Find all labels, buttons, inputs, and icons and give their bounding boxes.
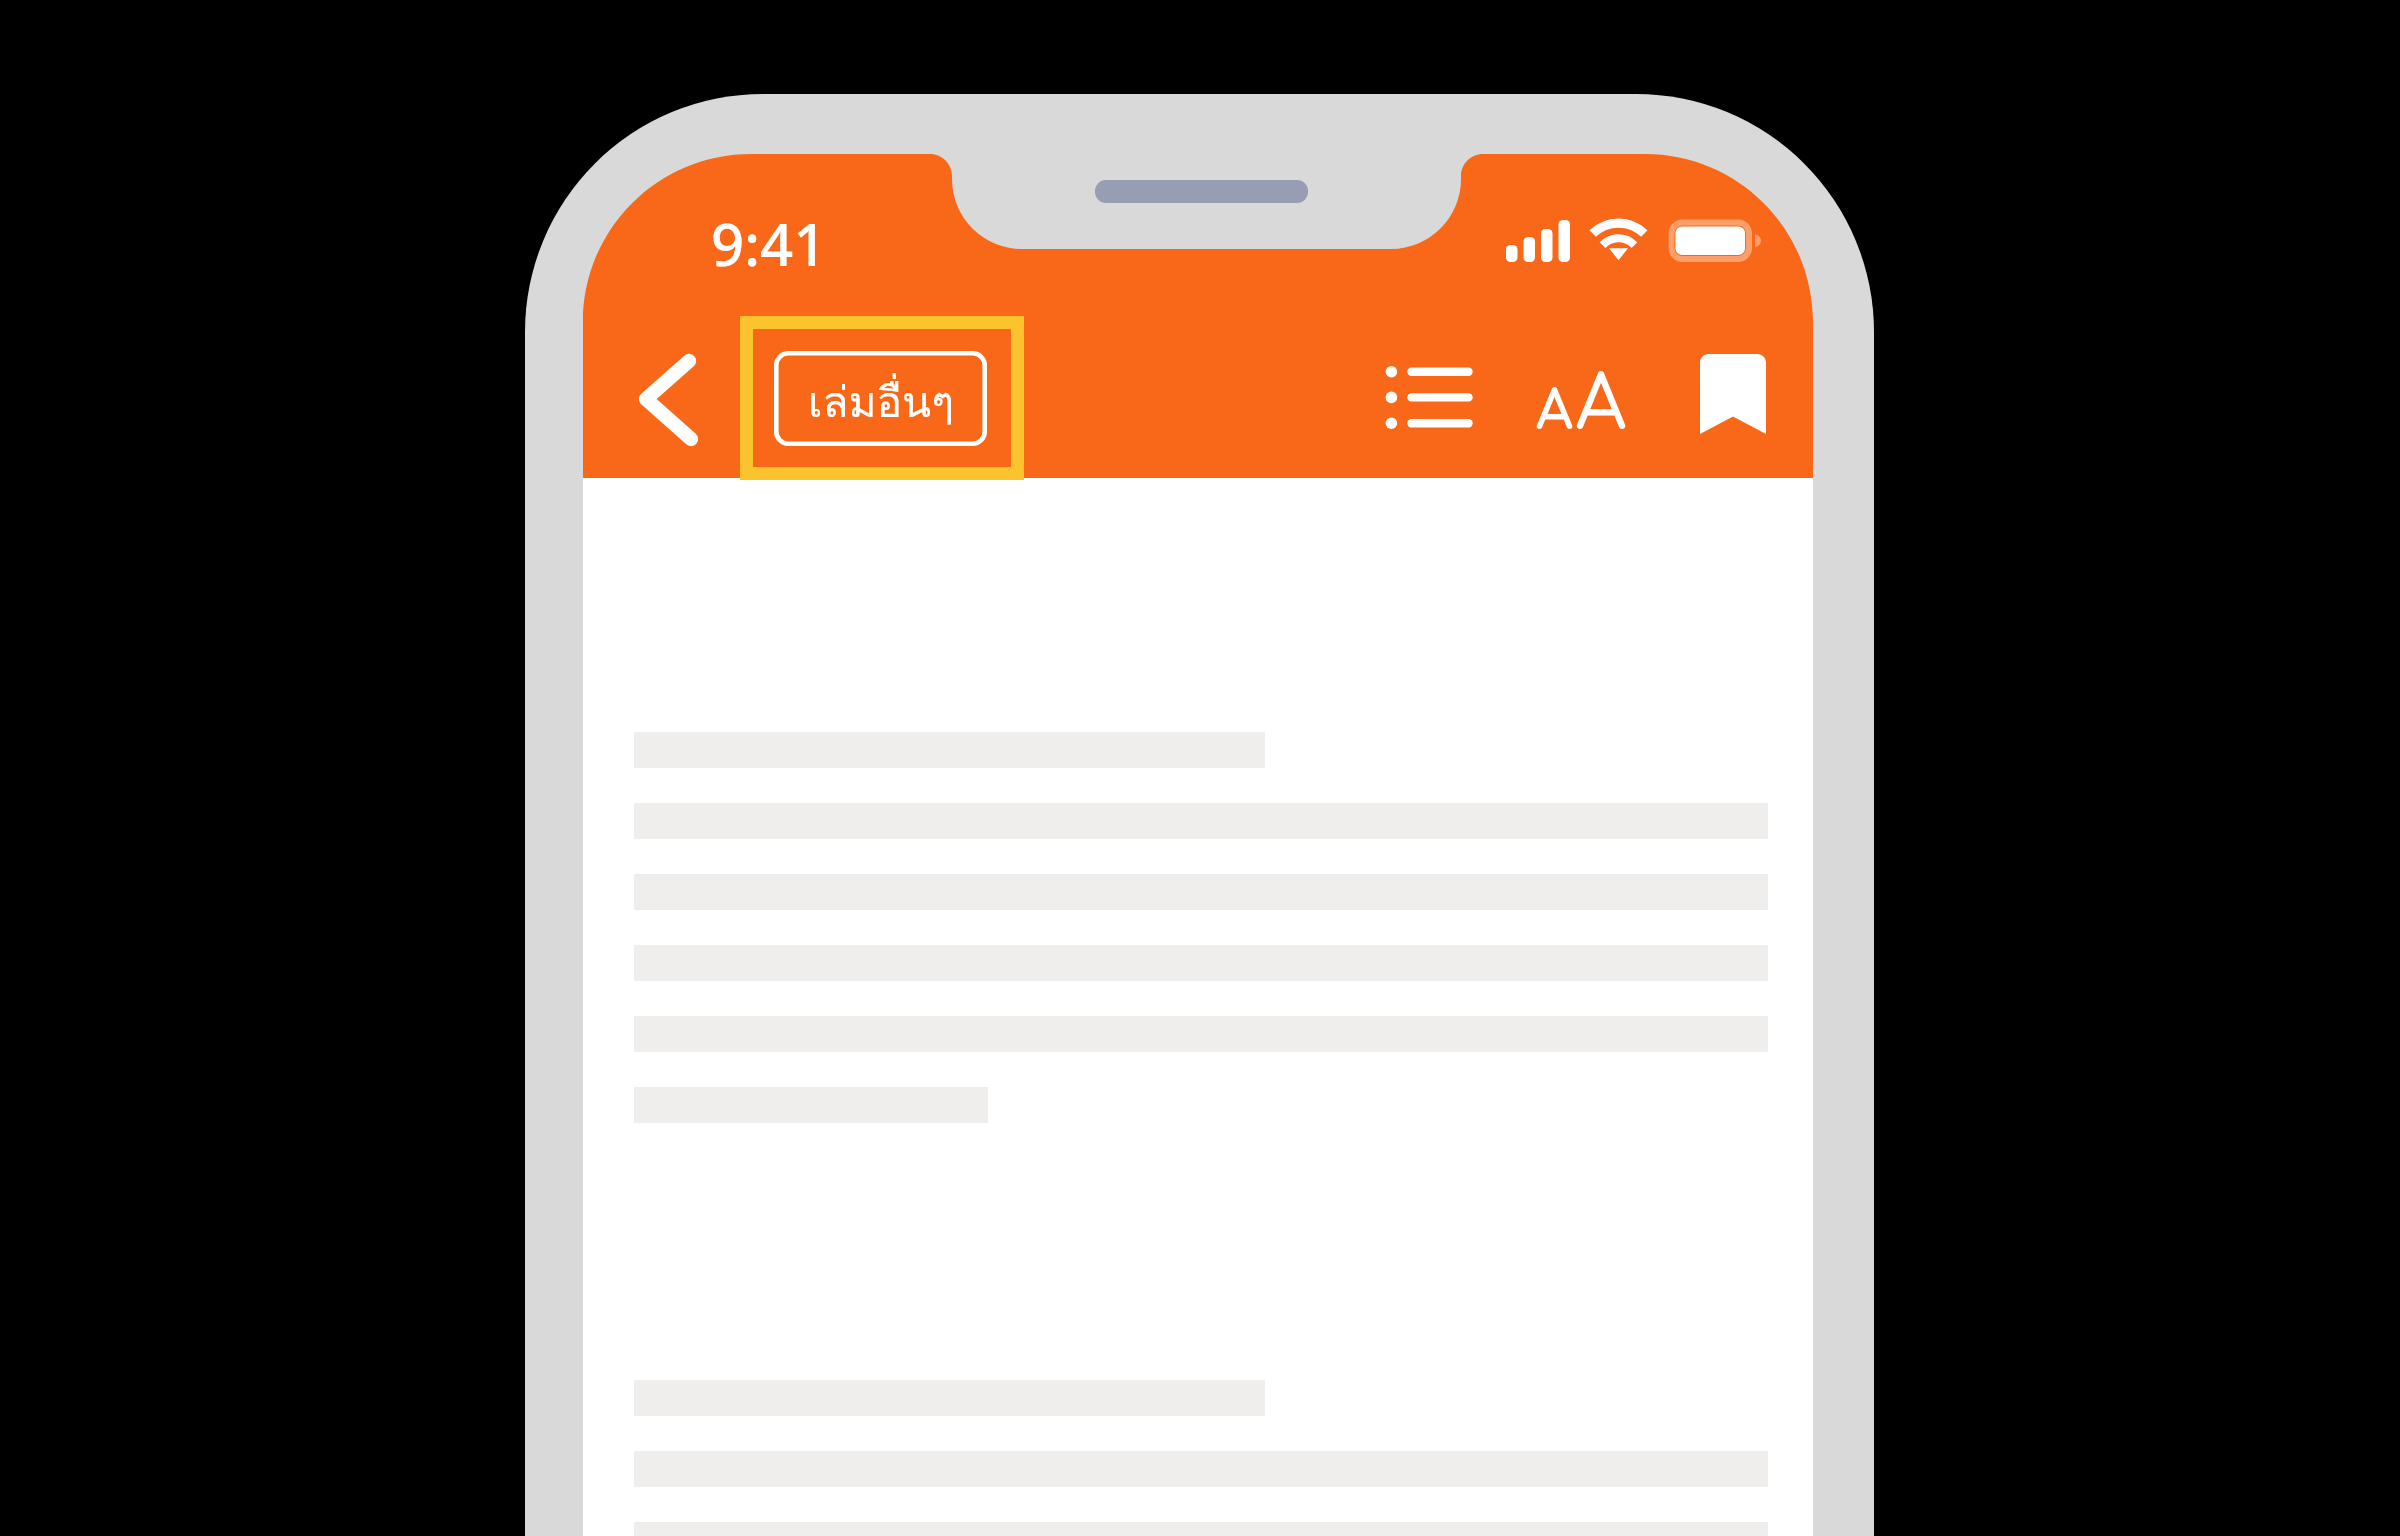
button[interactable]: Bookmark — [1700, 354, 1766, 434]
button[interactable]: เล่มอื่นๆ — [774, 351, 987, 446]
staticText: เล่มอื่นๆ — [808, 368, 954, 436]
button[interactable]: Back — [636, 350, 702, 450]
staticText: 9:41 — [711, 204, 827, 283]
button[interactable]: Text size — [1533, 360, 1629, 440]
button[interactable]: Table of contents — [1380, 360, 1478, 434]
